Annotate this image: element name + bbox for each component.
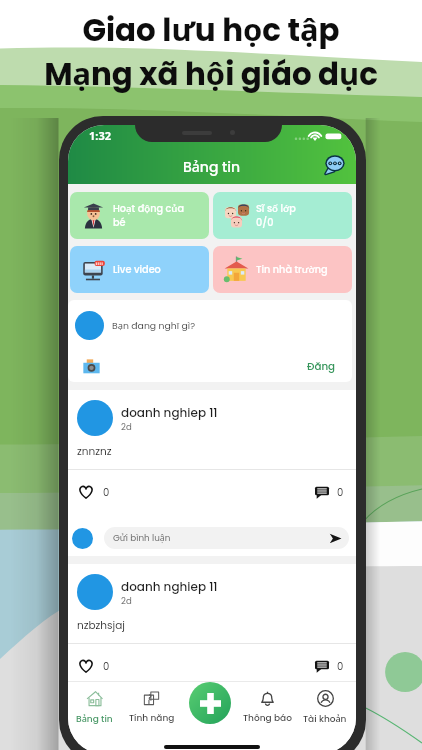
button[interactable]: 0 — [78, 484, 110, 500]
staticText: Mạng xã hội giáo dục — [44, 52, 378, 96]
staticText: nzbzhsjaj — [77, 618, 125, 633]
button[interactable]: 0 — [78, 658, 110, 674]
staticText: 2d — [121, 421, 132, 433]
staticText: Bảng tin — [76, 712, 113, 725]
button[interactable]: 0 — [315, 485, 344, 499]
button[interactable]: Tạo bài viết — [189, 682, 231, 724]
staticText: Sĩ số lớp 0/0 — [256, 202, 296, 229]
staticText: znnznz — [77, 444, 112, 459]
staticText: Giao lưu học tập — [82, 8, 340, 52]
button[interactable]: Tin nhà trường — [213, 246, 352, 293]
staticText: doanh nghiep 11 — [121, 578, 218, 595]
button[interactable]: Ảnh — [83, 358, 100, 375]
staticText: doanh nghiep 11 — [121, 404, 218, 421]
staticText: Bạn đang nghĩ gì? — [112, 319, 196, 332]
staticText: Hoạt động của bé — [113, 202, 184, 229]
staticText: 0 — [337, 659, 344, 673]
staticText: 2d — [121, 595, 132, 607]
staticText: 0 — [337, 485, 344, 499]
staticText: Bảng tin — [183, 157, 241, 177]
staticText: Gửi bình luận — [113, 532, 171, 544]
staticText: Tin nhà trường — [256, 263, 328, 277]
staticText: Live video — [113, 263, 161, 277]
staticText: Đăng — [307, 359, 336, 373]
button[interactable]: Tính năng — [123, 690, 180, 734]
button[interactable]: Thông báo — [238, 690, 296, 734]
button[interactable]: Gửi — [329, 532, 342, 545]
staticText: Tính năng — [129, 712, 175, 725]
button[interactable]: Tin nhắn — [323, 153, 346, 176]
button[interactable]: Live video — [70, 246, 209, 293]
staticText: 1:32 — [89, 128, 111, 143]
staticText: Thông báo — [243, 712, 292, 725]
button[interactable]: Gửi bình luận — [104, 527, 349, 549]
button[interactable]: Tài khoản — [296, 690, 354, 734]
button[interactable]: Bảng tin — [68, 690, 123, 734]
staticText: 0 — [103, 485, 110, 499]
button[interactable]: 0 — [315, 659, 344, 673]
button[interactable]: Hoạt động của bé — [70, 192, 209, 239]
button[interactable]: Đăng — [307, 359, 336, 373]
button[interactable]: Sĩ số lớp 0/0 — [213, 192, 352, 239]
staticText: Tài khoản — [303, 712, 347, 725]
staticText: 0 — [103, 659, 110, 673]
